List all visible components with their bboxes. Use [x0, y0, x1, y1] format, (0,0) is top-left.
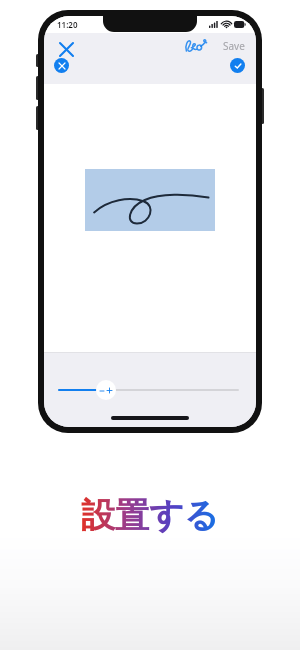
button[interactable]: Save	[223, 39, 245, 53]
staticText: 11:20	[57, 19, 78, 30]
button[interactable]: Close	[53, 36, 79, 62]
button[interactable]: Confirm	[230, 58, 245, 73]
button[interactable]: Brush size	[96, 380, 116, 400]
staticText: 設置する	[81, 494, 219, 537]
button[interactable]: Cancel	[54, 58, 69, 73]
